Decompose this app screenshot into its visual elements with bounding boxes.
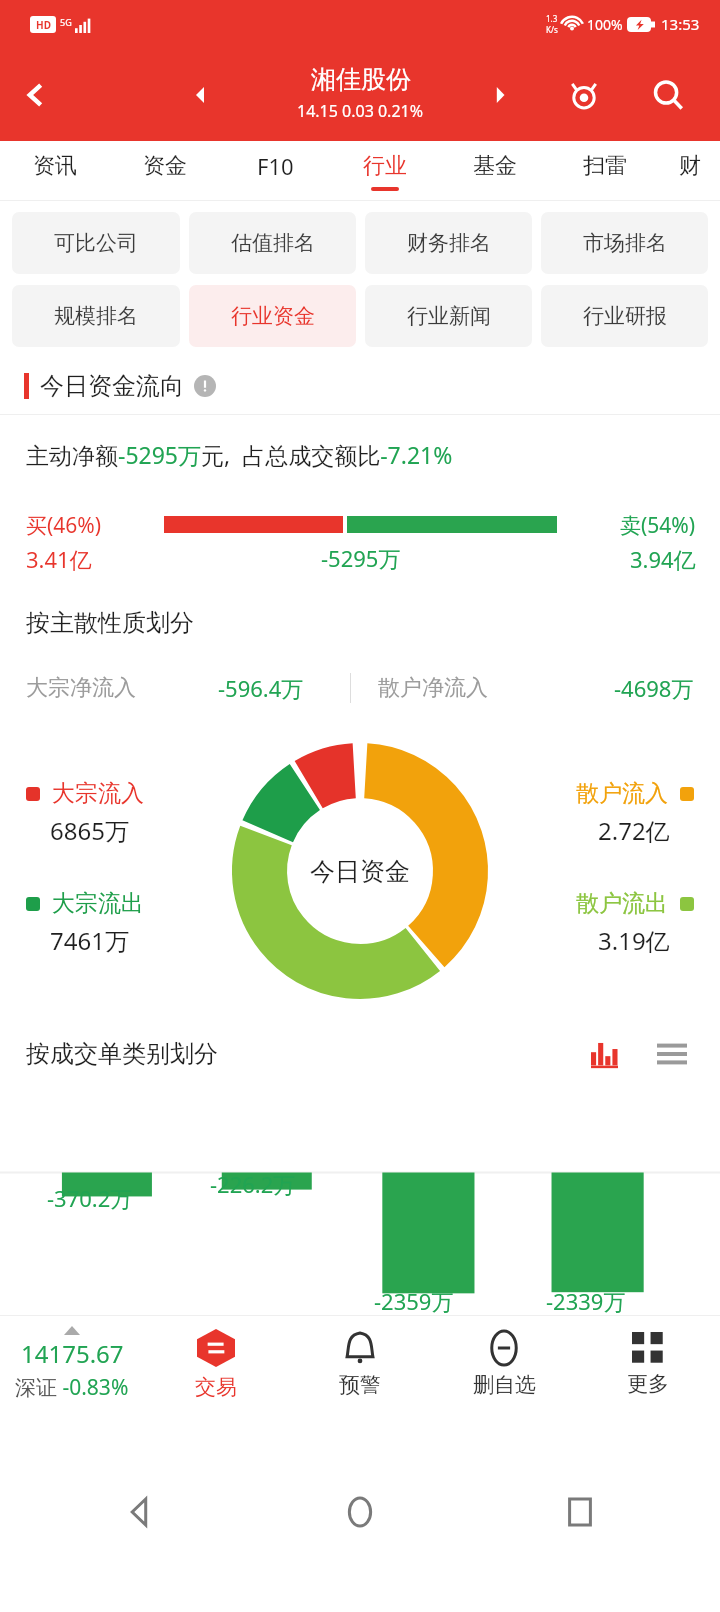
button[interactable]: Back [0, 59, 72, 131]
staticText: -5295万 [321, 543, 401, 573]
staticText: 更多 [627, 1371, 669, 1397]
staticText: 6865万 [50, 814, 129, 847]
button[interactable]: Search [640, 67, 696, 123]
staticText: -370.2万 [47, 1183, 133, 1213]
staticText: 主动净额-5295万元, 占总成交额比-7.21% [26, 439, 453, 470]
button[interactable]: 市场排名 [541, 212, 708, 274]
button[interactable]: 规模排名 [12, 285, 180, 347]
staticText: 3.19亿 [598, 924, 670, 957]
staticText: 按成交单类别划分 [26, 1039, 218, 1069]
staticText: -2359万 [374, 1286, 454, 1315]
staticText: -226.2万 [210, 1169, 296, 1199]
button[interactable]: 估值排名 [189, 212, 356, 274]
staticText: 删自选 [473, 1372, 536, 1398]
button[interactable]: 行业研报 [541, 285, 708, 347]
staticText: -4698万 [614, 673, 694, 703]
staticText: 资讯 [33, 152, 77, 180]
staticText: 行业 [363, 152, 407, 180]
button[interactable]: Back [110, 1482, 170, 1542]
staticText: 基金 [473, 152, 517, 180]
button[interactable]: 交易 [144, 1316, 288, 1412]
button[interactable]: 可比公司 [12, 212, 180, 274]
button[interactable]: 财 [660, 141, 720, 201]
staticText: 规模排名 [54, 303, 138, 329]
staticText: 3.94亿 [630, 544, 696, 574]
button[interactable]: List view [648, 1030, 696, 1078]
button[interactable]: Home [330, 1482, 390, 1542]
staticText: 行业资金 [231, 303, 315, 329]
staticText: 散户流入 [576, 779, 668, 808]
staticText: 湘佳股份 [311, 64, 411, 95]
staticText: HD [36, 18, 51, 32]
staticText: 2.72亿 [598, 814, 670, 847]
staticText: 资金 [143, 152, 187, 180]
staticText: 财务排名 [407, 230, 491, 256]
staticText: 散户流出 [576, 889, 668, 918]
staticText: 预警 [339, 1372, 381, 1398]
staticText: 行业新闻 [407, 303, 491, 329]
staticText: 5G [60, 16, 72, 28]
button[interactable]: Next stock [478, 73, 522, 117]
staticText: 1.3 [546, 13, 558, 24]
button[interactable]: 财务排名 [365, 212, 532, 274]
staticText: K/s [546, 24, 558, 35]
staticText: 散户净流入 [378, 674, 488, 702]
staticText: 7461万 [50, 924, 129, 957]
staticText: 估值排名 [231, 230, 315, 256]
staticText: 今日资金 [310, 856, 410, 887]
staticText: 卖(54%) [620, 511, 696, 540]
button[interactable]: 行业 [330, 141, 440, 201]
button[interactable]: 删自选 [432, 1316, 576, 1412]
staticText: 100% [587, 15, 623, 34]
staticText: 行业研报 [583, 303, 667, 329]
button[interactable]: F10 [220, 141, 330, 201]
staticText: 14175.67 [21, 1337, 124, 1370]
staticText: 大宗流入 [52, 779, 144, 808]
button[interactable]: Previous stock [178, 73, 222, 117]
staticText: 大宗流出 [52, 889, 144, 918]
button[interactable]: 行业资金 [189, 285, 356, 347]
staticText: F10 [257, 151, 294, 181]
button[interactable]: 行业新闻 [365, 285, 532, 347]
staticText: 买(46%) [26, 511, 102, 540]
staticText: -2339万 [546, 1286, 626, 1315]
staticText: 今日资金流向 [40, 371, 184, 401]
staticText: 14.15 0.03 0.21% [297, 100, 424, 122]
staticText: 深证 -0.83% [15, 1373, 129, 1402]
button[interactable]: 资讯 [0, 141, 110, 201]
button[interactable]: 14175.67 [0, 1316, 144, 1412]
staticText: 大宗净流入 [26, 674, 136, 702]
staticText: 3.41亿 [26, 544, 92, 574]
button[interactable]: 基金 [440, 141, 550, 201]
button[interactable]: Assistant [556, 67, 612, 123]
staticText: 交易 [195, 1374, 237, 1400]
staticText: 13:53 [661, 14, 700, 34]
button[interactable]: 扫雷 [550, 141, 660, 201]
staticText: 市场排名 [583, 230, 667, 256]
other: Info [194, 375, 216, 397]
staticText: 财 [679, 152, 701, 180]
button[interactable]: 更多 [576, 1316, 720, 1412]
staticText: 可比公司 [54, 230, 138, 256]
staticText: 按主散性质划分 [26, 608, 194, 638]
button[interactable]: 资金 [110, 141, 220, 201]
staticText: -596.4万 [218, 673, 304, 703]
staticText: 扫雷 [583, 152, 627, 180]
button[interactable]: Chart view [582, 1030, 630, 1078]
button[interactable]: Recents [550, 1482, 610, 1542]
button[interactable]: 预警 [288, 1316, 432, 1412]
